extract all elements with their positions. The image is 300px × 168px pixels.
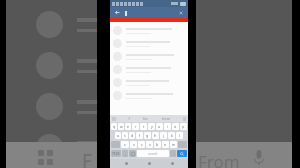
staticText: v xyxy=(149,142,151,147)
button[interactable]: t xyxy=(140,123,147,130)
staticText: m xyxy=(172,142,176,147)
button[interactable]: Space xyxy=(137,150,169,157)
staticText: ?123 xyxy=(112,151,120,156)
button[interactable]: Clear xyxy=(176,8,185,17)
button[interactable]: w xyxy=(118,123,124,130)
staticText: , xyxy=(125,151,126,156)
staticText: a xyxy=(117,133,119,138)
staticText: from xyxy=(162,116,170,121)
button[interactable]: u xyxy=(156,123,163,130)
staticText: s xyxy=(124,133,126,138)
staticText: . xyxy=(173,151,174,156)
button[interactable] xyxy=(110,76,188,89)
staticText: From xyxy=(198,150,240,168)
button[interactable]: e xyxy=(125,123,131,130)
button[interactable]: d xyxy=(129,132,135,139)
button[interactable]: , xyxy=(122,150,128,157)
staticText: t xyxy=(143,124,145,129)
button[interactable]: f xyxy=(136,132,143,139)
staticText: h xyxy=(154,133,157,138)
button[interactable] xyxy=(110,89,188,102)
staticText: c xyxy=(141,142,143,147)
staticText: x xyxy=(133,142,135,147)
button[interactable] xyxy=(110,24,188,37)
button[interactable]: g xyxy=(144,132,151,139)
staticText: n xyxy=(164,142,167,147)
staticText: o xyxy=(174,124,177,129)
staticText: z xyxy=(124,142,126,147)
button[interactable]: o xyxy=(172,123,179,130)
button[interactable]: Recents xyxy=(165,159,179,168)
button[interactable] xyxy=(110,50,188,63)
staticText: for xyxy=(143,116,148,121)
button[interactable]: l xyxy=(176,132,183,139)
button[interactable]: ?123 xyxy=(111,150,121,157)
button[interactable]: s xyxy=(122,132,128,139)
button[interactable]: i xyxy=(164,123,171,130)
button[interactable]: z xyxy=(121,141,129,148)
staticText: w xyxy=(120,124,123,129)
staticText: e xyxy=(127,124,129,129)
staticText: u xyxy=(158,124,161,129)
button[interactable]: f xyxy=(127,116,130,121)
button[interactable]: q xyxy=(111,123,117,130)
staticText: q xyxy=(113,124,116,129)
button[interactable]: Back xyxy=(113,8,122,17)
staticText: g xyxy=(146,133,149,138)
button[interactable]: for xyxy=(141,116,150,121)
button[interactable]: y xyxy=(148,123,155,130)
staticText: i xyxy=(167,124,168,129)
button[interactable]: a xyxy=(115,132,121,139)
staticText: f xyxy=(139,133,141,138)
button[interactable]: x xyxy=(130,141,137,148)
button[interactable]: Back xyxy=(119,159,133,168)
button[interactable]: Emoji xyxy=(129,150,136,157)
button[interactable]: r xyxy=(132,123,139,130)
button[interactable]: j xyxy=(160,132,167,139)
staticText: d xyxy=(131,133,134,138)
staticText: y xyxy=(151,124,153,129)
button[interactable]: p xyxy=(180,123,187,130)
staticText: r xyxy=(135,124,137,129)
button[interactable]: h xyxy=(152,132,159,139)
staticText: j xyxy=(163,133,164,138)
button[interactable]: n xyxy=(162,141,169,148)
staticText: b xyxy=(156,142,159,147)
button[interactable]: c xyxy=(138,141,145,148)
staticText: f xyxy=(128,116,130,121)
staticText: p xyxy=(182,124,185,129)
staticText: search xyxy=(148,152,158,156)
staticText: l xyxy=(179,133,180,138)
button[interactable]: Search xyxy=(177,150,187,157)
button[interactable]: Home xyxy=(142,159,156,168)
button[interactable]: b xyxy=(154,141,161,148)
button[interactable] xyxy=(125,9,176,17)
button[interactable] xyxy=(110,37,188,50)
button[interactable]: k xyxy=(168,132,175,139)
button[interactable]: from xyxy=(160,116,172,121)
button[interactable]: m xyxy=(170,141,177,148)
button[interactable]: v xyxy=(146,141,153,148)
button[interactable] xyxy=(110,63,188,76)
staticText: F xyxy=(82,148,92,168)
staticText: k xyxy=(171,133,173,138)
button[interactable]: . xyxy=(170,150,176,157)
